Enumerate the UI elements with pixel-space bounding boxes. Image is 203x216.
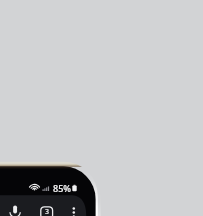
button[interactable]: Switch tabs, 3 open xyxy=(40,204,54,216)
staticText: 3 xyxy=(45,207,50,216)
staticText: 85% xyxy=(53,182,71,194)
button[interactable]: Voice search xyxy=(4,198,28,216)
button[interactable]: More options xyxy=(68,202,81,216)
